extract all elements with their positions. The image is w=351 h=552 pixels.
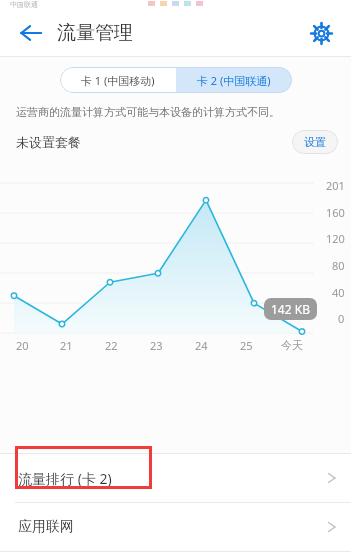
staticText: 40: [332, 285, 345, 300]
staticText: 今天: [281, 338, 303, 352]
button[interactable]: Settings: [300, 12, 342, 54]
staticText: 流量排行 (卡 2): [18, 469, 112, 488]
staticText: 中国联通: [10, 0, 38, 9]
staticText: 应用联网: [18, 518, 74, 536]
button[interactable]: Back: [13, 15, 49, 51]
staticText: 运营商的流量计算方式可能与本设备的计算方式不同。: [16, 105, 280, 119]
staticText: 设置: [304, 135, 326, 149]
staticText: 160: [326, 205, 345, 220]
staticText: 20: [16, 338, 29, 353]
staticText: 201: [326, 178, 345, 193]
button[interactable]: 卡 1 (中国移动): [60, 67, 176, 93]
staticText: 23: [150, 338, 163, 353]
button[interactable]: 设置: [292, 130, 338, 154]
staticText: 142 KB: [271, 301, 310, 317]
staticText: 120: [326, 231, 345, 246]
staticText: 流量管理: [57, 21, 133, 45]
staticText: 21: [60, 338, 73, 353]
button[interactable]: 流量排行 (卡 2): [0, 454, 351, 502]
staticText: 24: [195, 338, 208, 353]
button[interactable]: 卡 2 (中国联通): [176, 67, 292, 93]
button[interactable]: 应用联网: [0, 503, 351, 551]
staticText: 0: [338, 311, 345, 326]
staticText: 未设置套餐: [16, 134, 81, 150]
staticText: 25: [240, 338, 253, 353]
staticText: 80: [332, 258, 345, 273]
staticText: 卡 1 (中国移动): [81, 73, 155, 88]
staticText: 22: [105, 338, 118, 353]
staticText: 卡 2 (中国联通): [197, 73, 271, 88]
